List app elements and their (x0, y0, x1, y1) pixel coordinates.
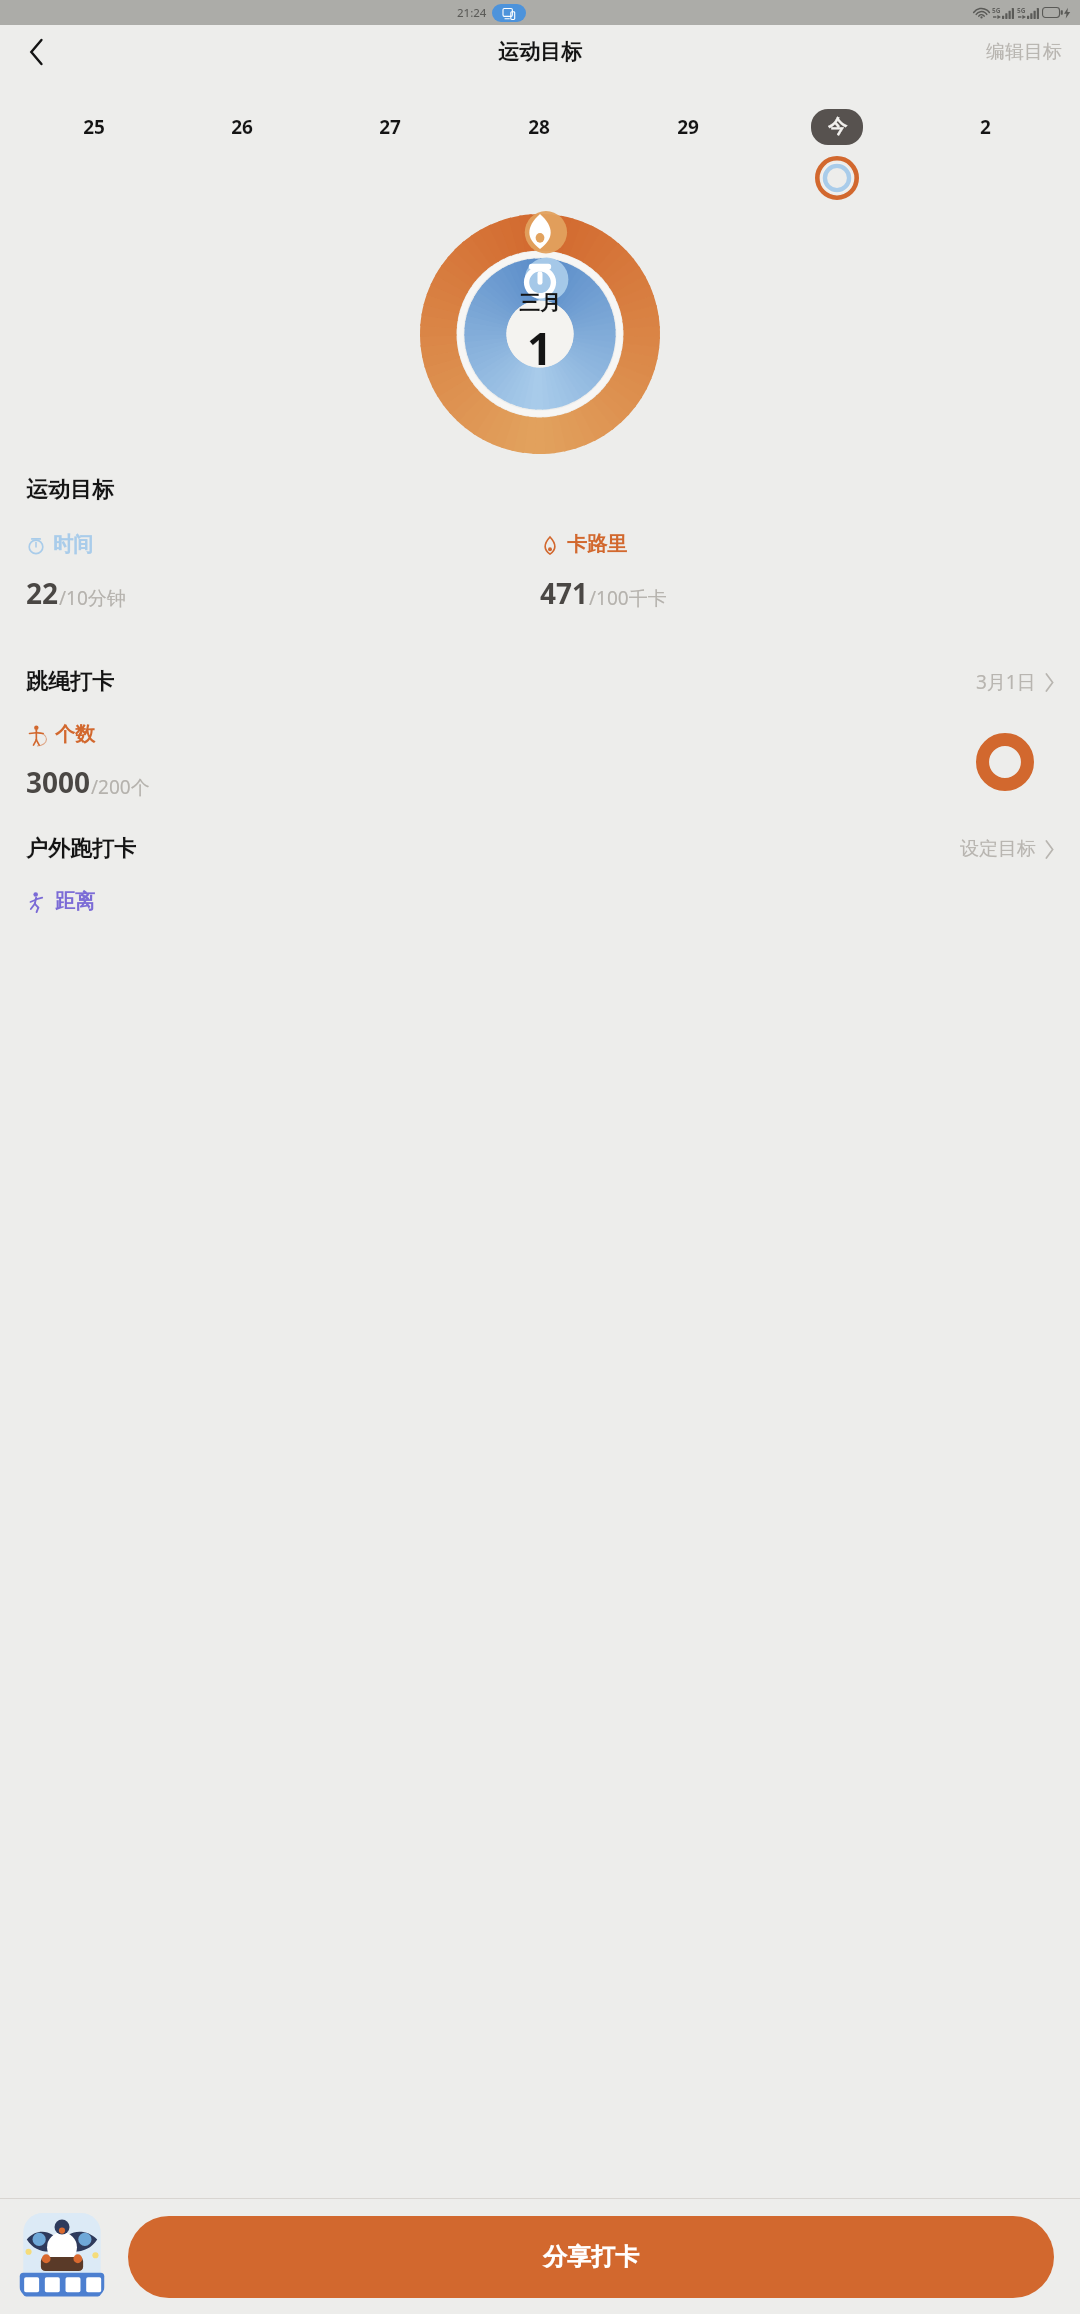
staticText: /10分钟 (59, 585, 126, 611)
button[interactable]: 编辑目标 (986, 40, 1062, 64)
staticText: 3000 (26, 763, 91, 801)
staticText: 5G (1017, 6, 1026, 15)
button[interactable]: 25 (20, 109, 168, 145)
button[interactable]: 卡路里 (540, 532, 1054, 612)
button[interactable]: 签到有礼 (18, 2213, 106, 2301)
staticText: 26 (231, 114, 253, 140)
staticText: 运动目标 (26, 476, 114, 504)
staticText: 三月 (519, 290, 561, 316)
staticText: 分享打卡 (543, 2242, 639, 2272)
staticText: 运动目标 (498, 39, 582, 65)
staticText: 跳绳打卡 (26, 668, 114, 696)
staticText: 471 (540, 574, 589, 612)
button[interactable]: 28 (464, 109, 613, 145)
button[interactable]: Cast (492, 4, 526, 22)
staticText: /200个 (91, 774, 150, 800)
staticText: 卡路里 (567, 532, 627, 557)
button[interactable]: 2 (911, 109, 1060, 145)
staticText: 27 (379, 114, 401, 140)
staticText: 5G (992, 6, 1001, 15)
staticText: 2 (980, 114, 991, 140)
staticText: 25 (83, 114, 105, 140)
button[interactable]: 26 (168, 109, 316, 145)
staticText: 距离 (55, 889, 95, 914)
button[interactable]: 个数 (26, 722, 976, 801)
staticText: 22 (26, 574, 59, 612)
button[interactable]: 27 (316, 109, 464, 145)
staticText: 29 (677, 114, 699, 140)
staticText: 今 (828, 115, 847, 139)
button[interactable]: 距离 (26, 889, 95, 914)
staticText: 个数 (55, 722, 95, 747)
staticText: 设定目标 (960, 837, 1036, 861)
button[interactable]: 29 (613, 109, 762, 145)
staticText: 3月1日 (976, 669, 1036, 695)
staticText: 28 (528, 114, 550, 140)
staticText: /100千卡 (589, 585, 667, 611)
staticText: 编辑目标 (986, 40, 1062, 64)
staticText: 21:24 (457, 5, 487, 21)
staticText: 户外跑打卡 (26, 835, 136, 863)
button[interactable]: 今 (762, 109, 911, 200)
staticText: 1 (527, 318, 553, 378)
button[interactable]: 3月1日 (976, 669, 1054, 695)
button[interactable]: 时间 (26, 532, 540, 612)
button[interactable]: Back (10, 26, 62, 78)
button[interactable]: 分享打卡 (128, 2216, 1054, 2298)
staticText: 时间 (53, 532, 93, 557)
button[interactable]: 设定目标 (960, 837, 1054, 861)
